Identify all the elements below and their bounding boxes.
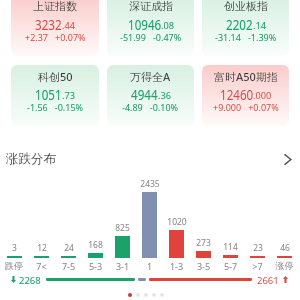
staticText: 3232 [35,14,62,34]
button[interactable]: 万得全A [107,65,194,126]
staticText: 富时A50期指 [214,69,278,84]
staticText: 创业板指 [224,0,268,13]
staticText: 2661 [257,274,279,284]
button[interactable]: 12 [28,174,55,258]
button[interactable]: 273 [190,174,217,258]
staticText: -1.56 -0.15% [27,101,84,113]
button[interactable]: 114 [217,174,244,258]
staticText: 273 [196,237,211,249]
staticText: 2202 [226,14,253,34]
staticText: .36 [158,89,171,102]
staticText: 涨停 [271,260,298,271]
staticText: 12 [37,242,47,254]
staticText: .14 [253,19,266,32]
staticText: 跌停 [0,260,28,271]
staticText: 2435 [140,178,160,190]
staticText: 1 [136,260,163,272]
staticText: 825 [115,222,130,234]
staticText: 46 [280,242,290,254]
button[interactable]: 2435 [136,174,163,258]
staticText: -51.99 -0.47% [120,31,182,43]
other: More [284,154,292,165]
staticText: 4944 [131,84,158,104]
staticText: -31.14 -1.39% [215,31,277,43]
staticText: 涨跌分布 [6,151,56,167]
button[interactable]: 深证成指 [107,0,194,56]
button[interactable]: 168 [82,174,109,258]
staticText: .44 [62,19,75,32]
staticText: 1-3 [163,260,190,272]
staticText: 深证成指 [129,0,173,13]
staticText: .73 [62,89,75,102]
button[interactable]: 1020 [163,174,190,258]
staticText: 1020 [167,216,187,228]
button[interactable]: 3 [0,174,28,258]
button[interactable]: 24 [55,174,82,258]
button[interactable]: 23 [244,174,271,258]
button[interactable]: 825 [109,174,136,258]
staticText: 10946 [128,14,162,34]
staticText: 2268 [19,274,41,284]
staticText: 3 [12,242,17,254]
button[interactable]: 科创50 [11,65,99,126]
staticText: .08 [161,19,174,32]
staticText: 168 [88,239,103,251]
button[interactable]: 46 [271,174,298,258]
staticText: 5-7 [217,260,244,272]
staticText: -4.89 -0.10% [122,101,179,113]
staticText: 1051 [35,84,62,104]
staticText: 万得全A [130,69,171,84]
staticText: +2.37 +0.07% [25,31,86,43]
staticText: +9.000 +0.07% [213,101,279,113]
staticText: 23 [253,242,263,254]
staticText: 24 [64,242,74,254]
staticText: 7< [28,260,55,272]
staticText: >7 [244,260,271,272]
staticText: 114 [223,241,238,253]
staticText: 7-5 [55,260,82,272]
staticText: 5-3 [82,260,109,272]
button[interactable]: 涨跌分布 [0,146,300,172]
button[interactable]: 富时A50期指 [202,65,289,126]
staticText: 上证指数 [33,0,77,13]
staticText: 科创50 [38,69,73,84]
staticText: .000 [253,89,272,102]
staticText: 12460 [220,84,254,104]
button[interactable]: 上证指数 [11,0,99,56]
staticText: 3-5 [190,260,217,272]
staticText: 3-1 [109,260,136,272]
button[interactable]: 创业板指 [202,0,289,56]
